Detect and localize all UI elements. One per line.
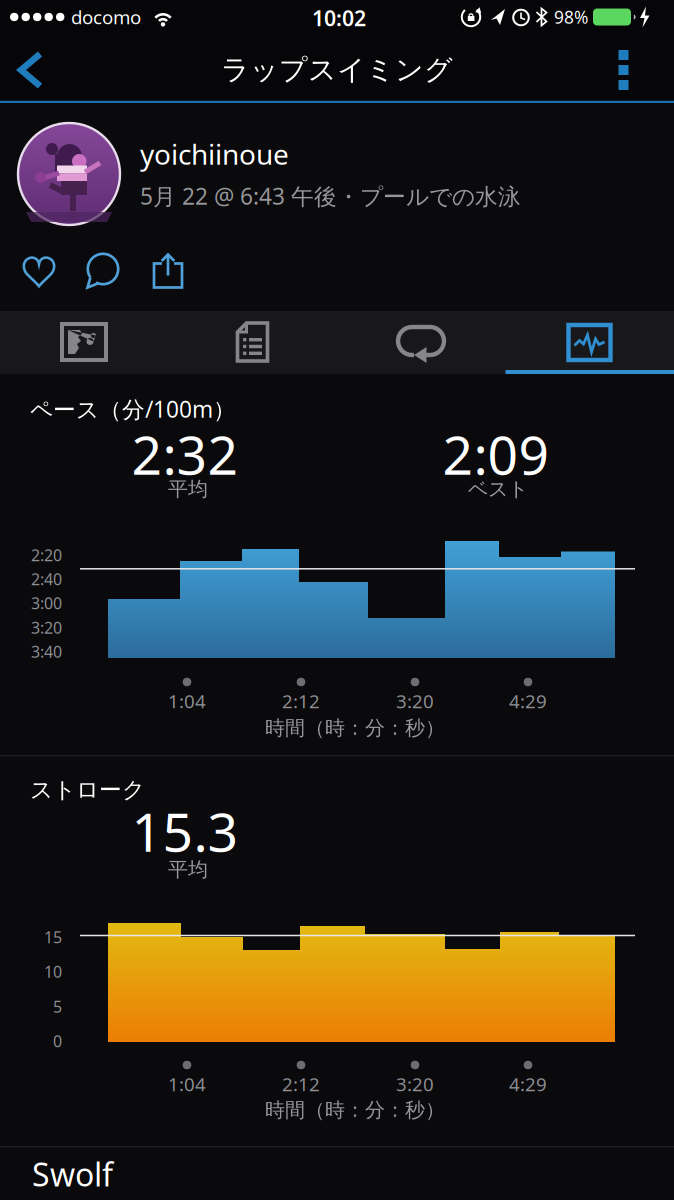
staticText: 4:29 — [509, 689, 547, 713]
staticText: 4:29 — [509, 1072, 547, 1096]
staticText: yoichiinoue — [140, 135, 289, 173]
staticText: 2:09 — [442, 419, 549, 489]
staticText: 5 — [53, 996, 62, 1017]
button[interactable]: Back — [9, 47, 53, 93]
staticText: 3:20 — [396, 1072, 434, 1096]
staticText: ペース（分/100m） — [30, 394, 236, 424]
staticText: 平均 — [168, 857, 208, 882]
staticText: 1:04 — [168, 1072, 206, 1096]
staticText: Swolf — [32, 1153, 113, 1195]
button[interactable]: Laps — [221, 311, 283, 374]
staticText: 0 — [53, 1030, 62, 1052]
staticText: 1:04 — [168, 689, 206, 713]
staticText: 3:00 — [31, 592, 62, 614]
staticText: ラップスイミング — [221, 53, 453, 87]
staticText: 2:12 — [282, 1072, 320, 1096]
staticText: 3:40 — [31, 641, 62, 662]
staticText: 2:40 — [31, 568, 62, 590]
staticText: 平均 — [168, 477, 208, 501]
staticText: 15.3 — [131, 796, 238, 866]
button[interactable]: Share — [146, 250, 190, 294]
staticText: ストローク — [30, 776, 145, 804]
staticText: ベスト — [468, 477, 528, 501]
button[interactable]: Intervals — [390, 311, 452, 374]
button[interactable]: Overview — [53, 311, 115, 374]
staticText: 3:20 — [396, 689, 434, 713]
staticText: 時間（時：分：秒） — [265, 1098, 445, 1122]
button[interactable]: Comment — [81, 250, 125, 294]
staticText: 10 — [44, 961, 62, 982]
button[interactable]: Charts — [558, 311, 620, 374]
staticText: 2:12 — [282, 689, 320, 713]
staticText: 2:20 — [31, 544, 62, 566]
staticText: 98% — [554, 5, 588, 28]
button[interactable]: Like — [17, 250, 61, 294]
staticText: 5月 22 @ 6:43 午後・プールでの水泳 — [140, 181, 521, 211]
staticText: 10:02 — [312, 4, 366, 32]
button[interactable]: More options — [601, 45, 645, 95]
staticText: 2:32 — [131, 419, 238, 489]
staticText: 時間（時：分：秒） — [265, 716, 445, 740]
staticText: docomo — [71, 5, 141, 29]
staticText: 3:20 — [31, 617, 62, 638]
staticText: 15 — [44, 926, 62, 948]
